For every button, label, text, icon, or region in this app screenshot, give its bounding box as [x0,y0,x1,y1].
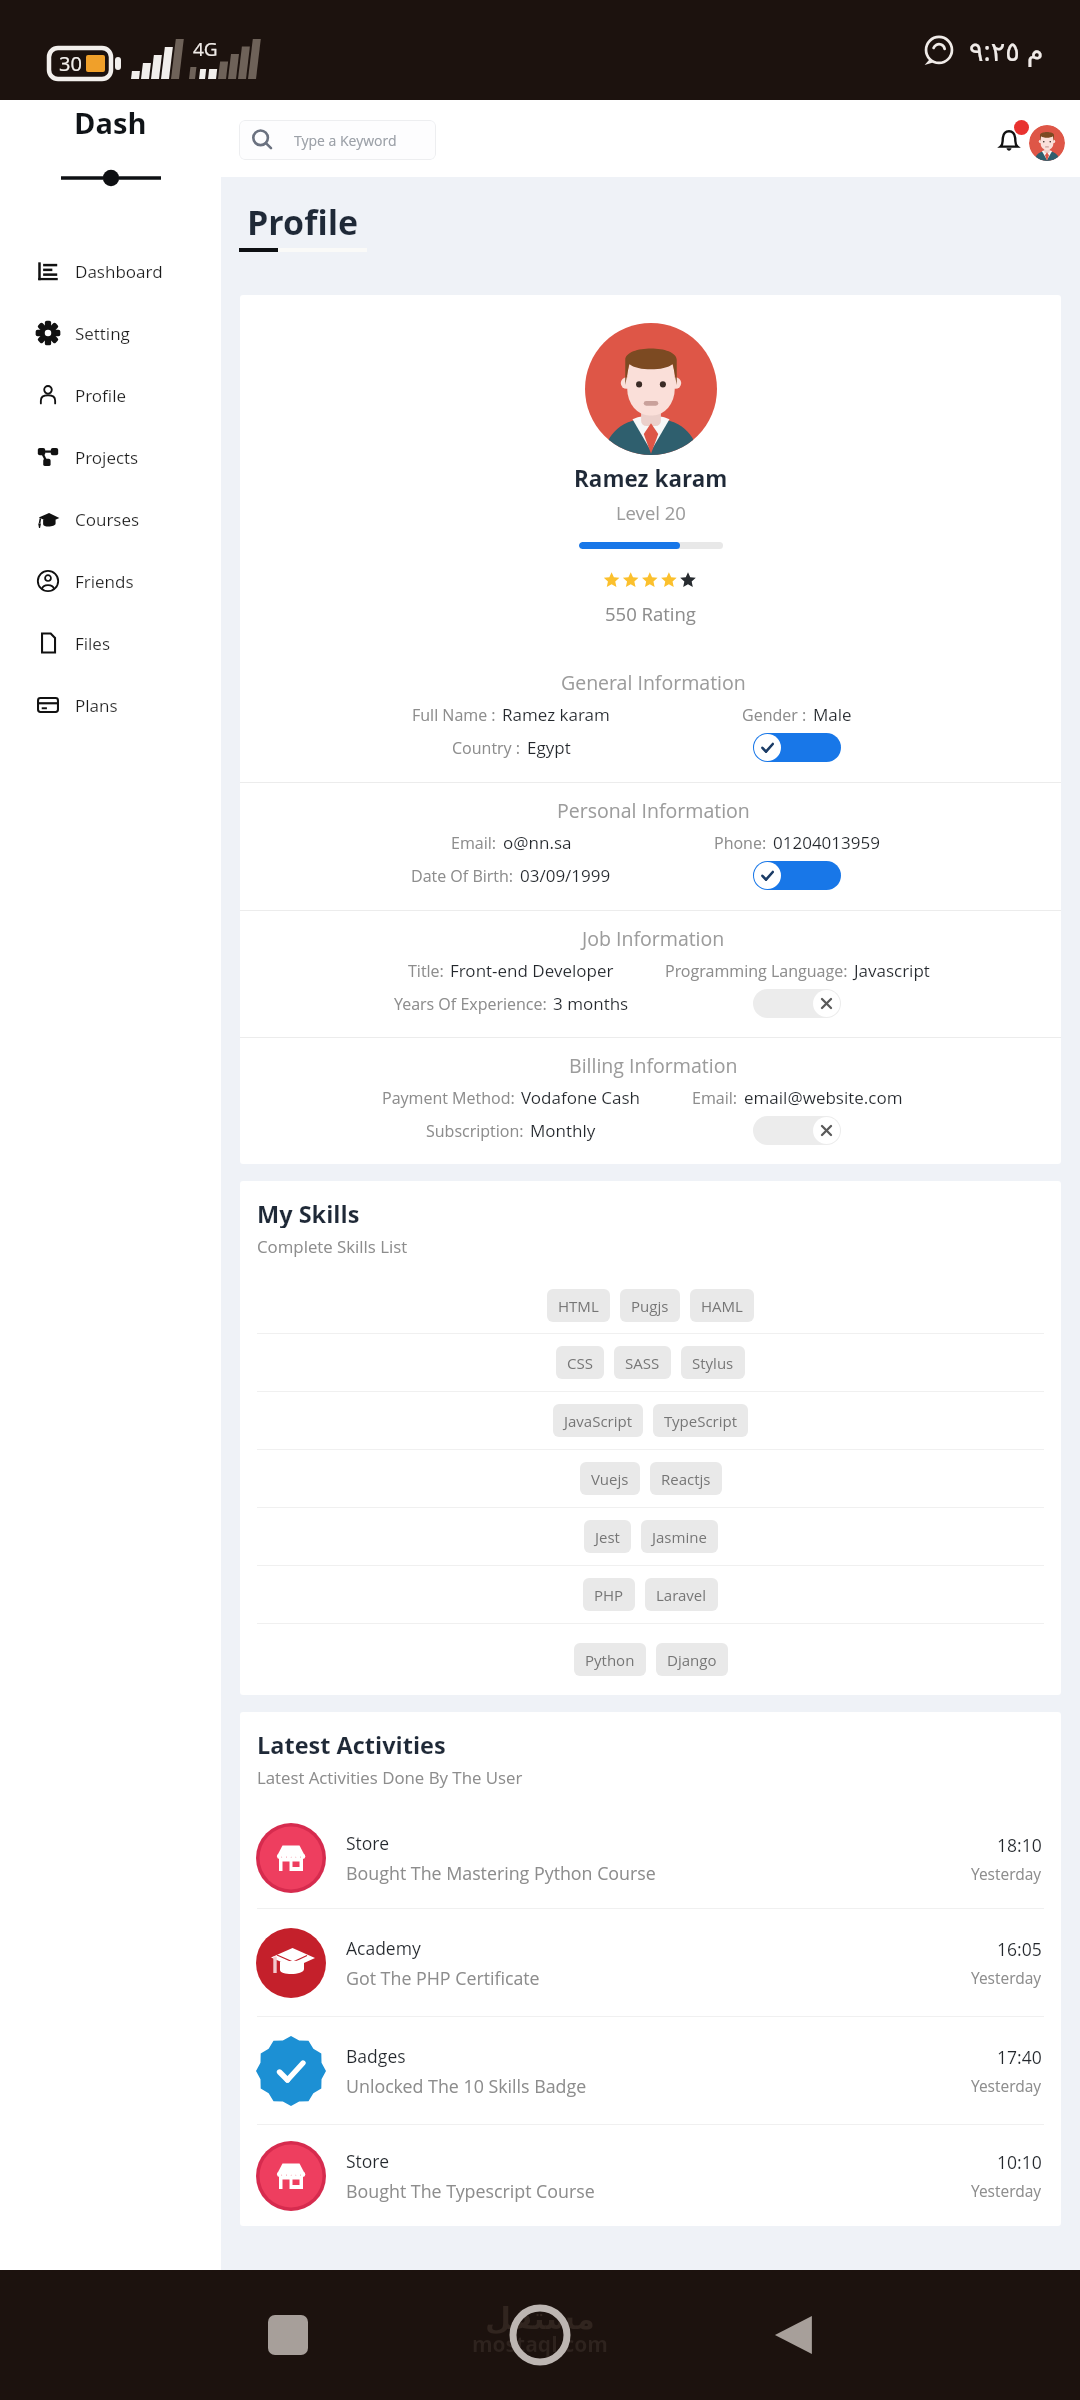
staticText: mostaql.com [472,2330,608,2359]
staticText: Courses [75,508,140,531]
button[interactable]: Stylus [681,1346,745,1379]
staticText: Email: [451,832,497,854]
staticText: Projects [75,446,139,469]
button[interactable]: Files [0,612,221,674]
button[interactable]: Academy [240,1909,1061,2016]
staticText: JavaScript [564,1411,632,1431]
button[interactable]: PHP [583,1578,635,1611]
staticText: Academy [346,1936,421,1960]
button[interactable]: Plans [0,674,221,736]
staticText: Yesterday [971,2075,1042,2096]
staticText: 30 [59,50,82,77]
button[interactable]: Enabled toggle [753,861,841,890]
staticText: CSS [567,1353,593,1373]
staticText: Stylus [692,1353,734,1373]
button[interactable]: Projects [0,426,221,488]
button[interactable]: Reactjs [650,1462,722,1495]
button[interactable]: Dashboard [0,240,221,302]
button[interactable]: Jasmine [641,1520,718,1553]
staticText: Ramez karam [502,703,610,726]
button[interactable]: Enabled toggle [753,733,841,762]
staticText: Latest Activities [257,1729,446,1759]
button[interactable]: Notifications [989,120,1029,160]
staticText: Got The PHP Certificate [346,1966,540,1990]
staticText: PHP [594,1585,624,1605]
staticText: 01204013959 [773,831,880,854]
staticText: Title: [408,960,444,982]
staticText: o@nn.sa [503,831,572,854]
button[interactable]: SASS [614,1346,671,1379]
button[interactable]: JavaScript [553,1404,643,1437]
staticText: Dash [74,103,147,142]
staticText: 10:10 [997,2150,1042,2174]
staticText: Laravel [656,1585,707,1605]
button[interactable]: Friends [0,550,221,612]
staticText: Profile [75,384,126,407]
staticText: Complete Skills List [257,1235,408,1258]
staticText: email@website.com [744,1086,903,1109]
button[interactable]: HAML [690,1289,754,1322]
button[interactable]: CSS [556,1346,604,1379]
staticText: 3 months [553,992,629,1015]
staticText: Egypt [527,736,571,759]
staticText: Reactjs [661,1469,711,1489]
staticText: Years Of Experience: [394,993,547,1015]
staticText: Payment Method: [382,1087,515,1109]
button[interactable]: Type a Keyword [239,120,436,160]
staticText: Store [346,1831,389,1855]
staticText: Setting [75,322,130,345]
button[interactable]: Account [1029,125,1065,161]
staticText: Files [75,632,111,655]
button[interactable]: Badges [240,2017,1061,2124]
staticText: Ramez karam [574,463,728,494]
staticText: HTML [558,1296,599,1316]
button[interactable]: Vuejs [580,1462,640,1495]
staticText: Full Name : [412,704,496,726]
staticText: Yesterday [971,2180,1042,2201]
staticText: Job Information [582,925,725,952]
staticText: Subscription: [426,1120,524,1142]
staticText: Email: [692,1087,738,1109]
staticText: Type a Keyword [294,131,397,150]
button[interactable]: Disabled toggle [753,989,841,1018]
staticText: 18:10 [997,1833,1042,1857]
button[interactable]: Profile [0,364,221,426]
button[interactable]: TypeScript [653,1404,748,1437]
staticText: Programming Language: [665,960,848,982]
staticText: 17:40 [997,2045,1042,2069]
button[interactable]: Home [504,2299,576,2371]
button[interactable]: Courses [0,488,221,550]
button[interactable]: Python [574,1643,646,1676]
button[interactable]: Store [240,2125,1061,2226]
button[interactable]: Jest [584,1520,631,1553]
button[interactable]: Pugjs [620,1289,680,1322]
staticText: 03/09/1999 [520,864,611,887]
button[interactable]: Django [656,1643,728,1676]
staticText: Yesterday [971,1863,1042,1884]
staticText: Plans [75,694,118,717]
button[interactable]: Store [240,1808,1061,1908]
staticText: Dashboard [75,260,163,283]
staticText: Gender : [742,704,807,726]
staticText: Country : [452,737,521,759]
staticText: General Information [561,669,746,696]
staticText: Javascript [854,959,930,982]
button[interactable]: Recents [258,2305,318,2365]
button[interactable]: Laravel [645,1578,718,1611]
staticText: مستقل [485,2301,595,2336]
staticText: 4G [193,36,218,62]
staticText: Python [585,1650,635,1670]
staticText: م ٩:٢٥ [969,32,1044,69]
staticText: Yesterday [971,1967,1042,1988]
button[interactable]: Disabled toggle [753,1116,841,1145]
staticText: Pugjs [631,1296,669,1316]
button[interactable]: Back [763,2305,823,2365]
staticText: Unlocked The 10 Skills Badge [346,2074,587,2098]
staticText: Friends [75,570,134,593]
staticText: HAML [701,1296,743,1316]
button[interactable]: HTML [547,1289,610,1322]
button[interactable]: Setting [0,302,221,364]
staticText: Jasmine [652,1527,707,1547]
staticText: TypeScript [664,1411,737,1431]
staticText: Badges [346,2044,406,2068]
